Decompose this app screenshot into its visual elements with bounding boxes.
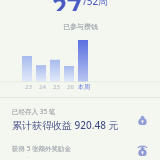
staticText: 23: [25, 83, 32, 91]
button[interactable]: 获得 5 张额外奖励金: [0, 142, 160, 160]
staticText: 已经存入 35 笔: [12, 107, 56, 116]
button[interactable]: 已经存入 35 笔: [0, 105, 160, 134]
staticText: 获得 5 张额外奖励金: [12, 144, 72, 153]
staticText: 25: [53, 83, 60, 91]
staticText: 已参与攒钱: [63, 22, 98, 31]
staticText: /52周: [83, 0, 109, 8]
staticText: 24: [39, 83, 46, 91]
staticText: 27: [52, 0, 82, 11]
staticText: 本周: [78, 83, 90, 91]
button[interactable]: Cash-back detail: [134, 144, 150, 158]
button[interactable]: Earnings detail: [134, 112, 150, 128]
staticText: 累计获得收益 920.48 元: [12, 118, 119, 132]
staticText: 26: [67, 83, 74, 91]
